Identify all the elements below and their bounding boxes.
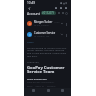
button[interactable]: Reply — [60, 22, 64, 26]
staticText: Customer Service Team — [34, 31, 60, 35]
button[interactable]: Tab 0 — [28, 89, 38, 96]
button[interactable]: Tab 2 — [57, 89, 67, 96]
button[interactable]: Action 2 — [63, 5, 68, 10]
button[interactable]: More — [64, 33, 68, 37]
button[interactable]: Morgan Tucker — [27, 18, 68, 29]
staticText: www.goopay.com/support — [27, 81, 55, 84]
button[interactable]: Tag 1 — [61, 11, 65, 15]
staticText: to Morgan, me — [34, 35, 50, 38]
staticText: GooPay Customer Service Team — [27, 65, 68, 75]
button[interactable]: Action 1 — [58, 5, 63, 10]
button[interactable]: Search — [65, 11, 68, 16]
staticText: to me, support — [34, 24, 50, 27]
staticText: Thank you, — [27, 60, 40, 63]
staticText: Morgan Tucker — [34, 20, 53, 24]
staticText: We are writing to confirm that your rece… — [27, 46, 68, 58]
button[interactable]: Back — [27, 6, 31, 10]
staticText: Reply · Reply all · Forward — [27, 85, 56, 88]
staticText: 10:49 — [27, 1, 36, 5]
button[interactable]: More — [64, 22, 68, 26]
staticText: Show quoted text — [27, 77, 47, 80]
button[interactable]: Tag 0 — [57, 11, 61, 15]
button[interactable]: #0132479 — [41, 11, 56, 15]
button[interactable]: Reply — [60, 33, 64, 37]
button[interactable]: Tab 1 — [43, 89, 53, 96]
staticText: #0132479 — [42, 11, 55, 15]
staticText: ● ▲ ▮ — [60, 1, 68, 5]
staticText: 12:40 (2h ago) — [54, 21, 60, 24]
staticText: Today — [27, 40, 34, 43]
staticText: Account — [27, 11, 40, 16]
button[interactable]: Action 0 — [53, 5, 58, 10]
button[interactable]: Customer Service Team — [27, 29, 68, 40]
